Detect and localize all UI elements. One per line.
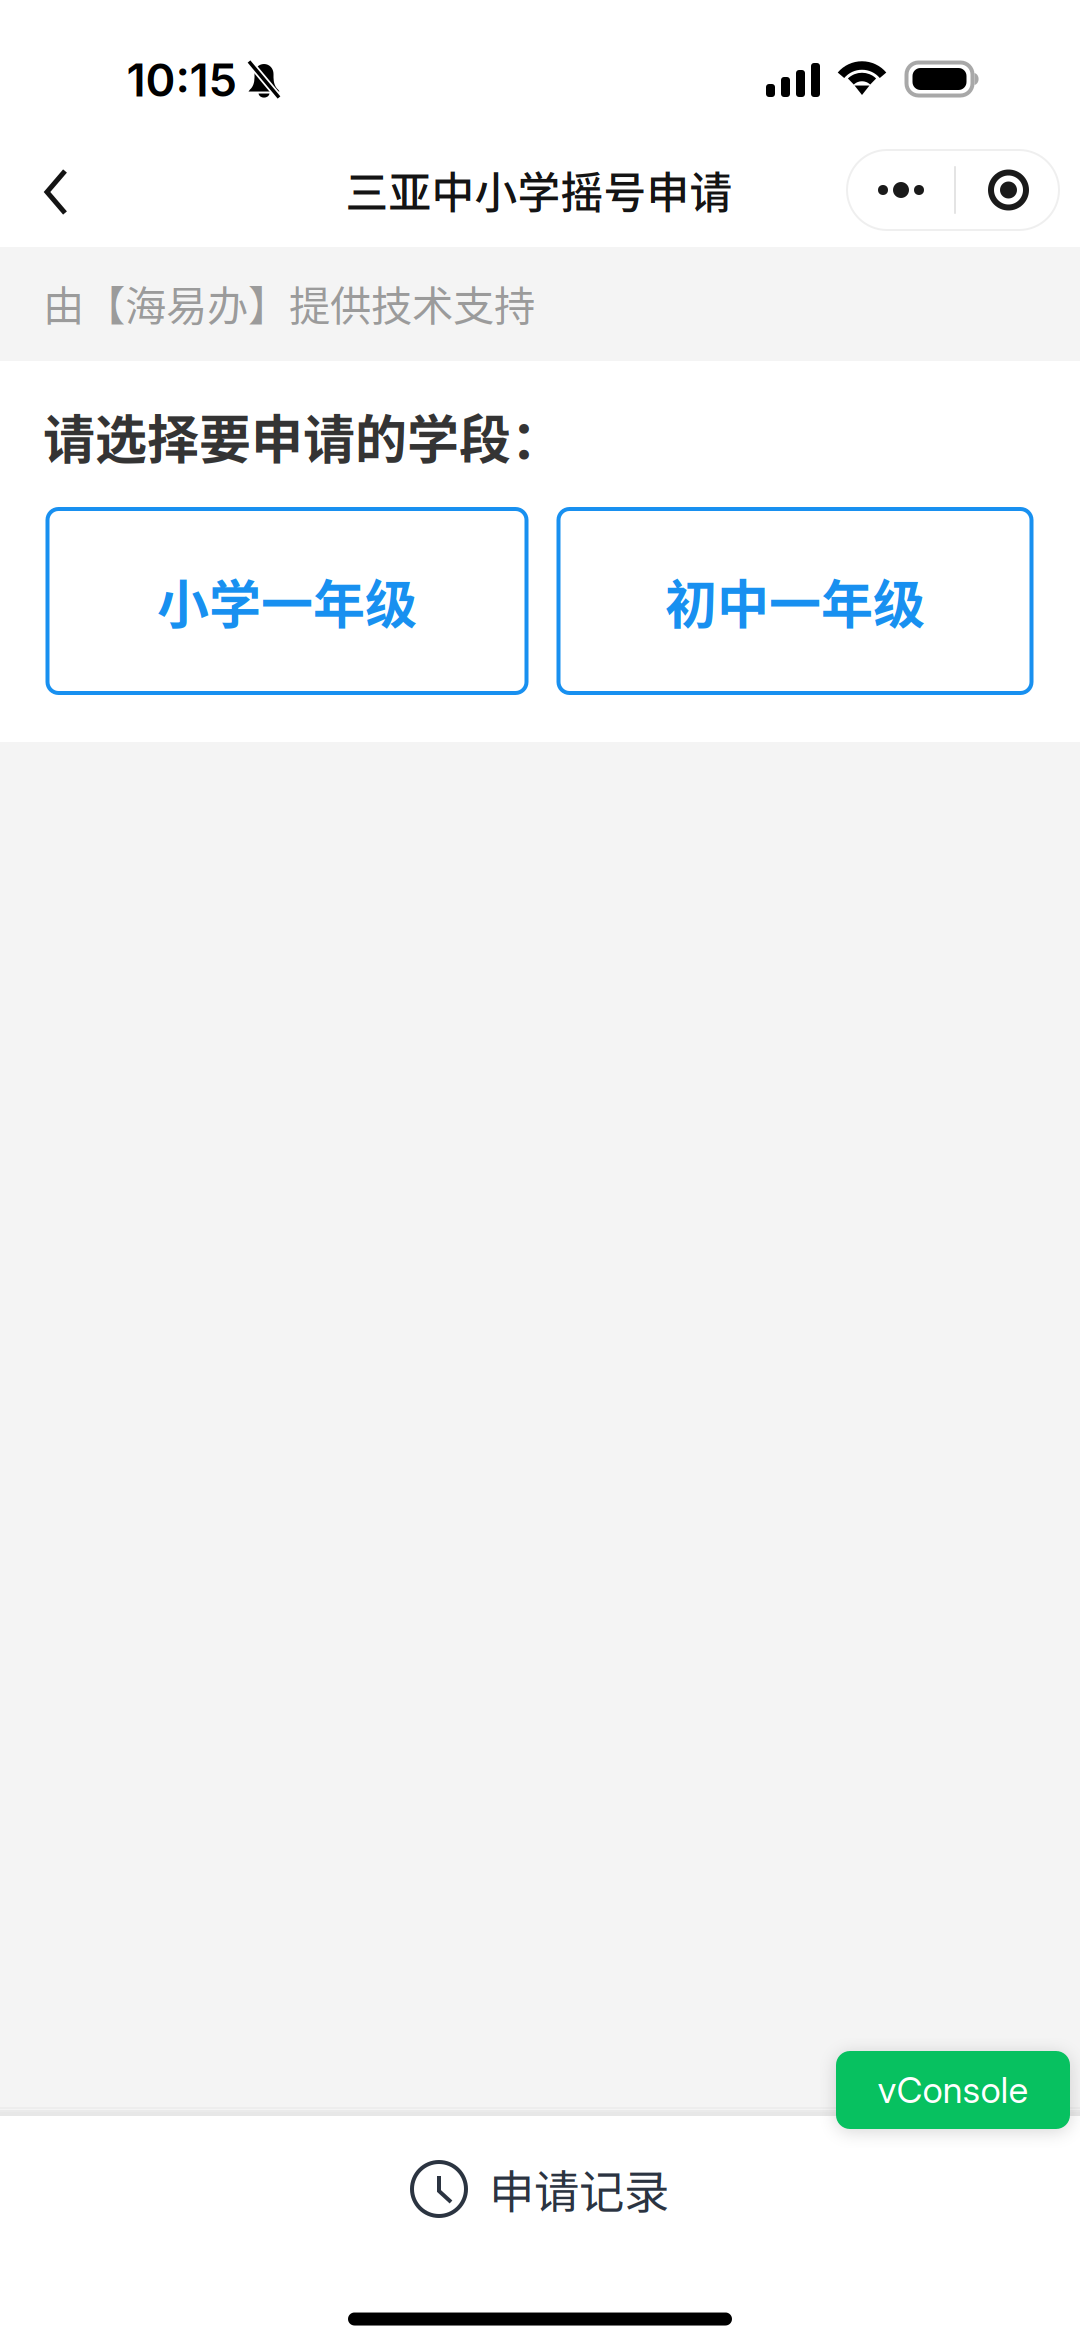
button[interactable]: 申请记录 (0, 2114, 1080, 2264)
staticText: 小学一年级 (157, 563, 417, 639)
button[interactable]: 小学一年级 (47, 509, 526, 693)
button[interactable]: vConsole (836, 2051, 1070, 2129)
staticText: 三亚中小学摇号申请 (345, 159, 732, 221)
staticText: 由【海易办】提供技术支持 (43, 273, 535, 333)
staticText: 申请记录 (489, 2156, 669, 2222)
staticText: 10:15 (126, 53, 237, 107)
staticText: 请选择要申请的学段： (43, 398, 563, 474)
button[interactable]: Close mini program (955, 150, 1061, 230)
button[interactable]: 初中一年级 (558, 509, 1031, 693)
staticText: vConsole (877, 2068, 1028, 2112)
button[interactable]: More options (848, 150, 954, 230)
staticText: 初中一年级 (665, 563, 925, 639)
button[interactable]: Back (8, 136, 104, 248)
